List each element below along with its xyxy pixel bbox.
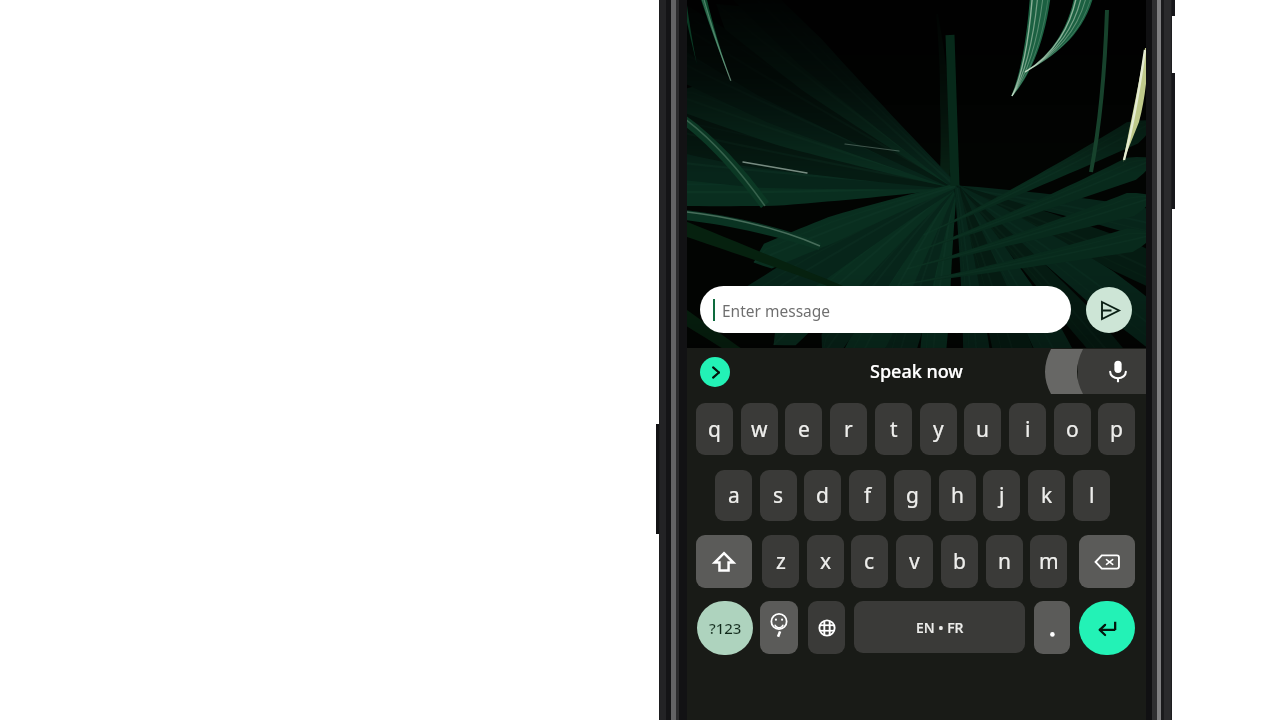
staticText: d: [816, 481, 829, 510]
staticText: w: [751, 415, 768, 444]
button[interactable]: o: [1054, 403, 1091, 455]
button[interactable]: Enter: [1079, 601, 1135, 655]
button[interactable]: Shift: [696, 535, 752, 588]
staticText: r: [844, 415, 853, 444]
button[interactable]: m: [1030, 535, 1067, 588]
button[interactable]: f: [849, 470, 886, 521]
button[interactable]: a: [715, 470, 752, 521]
staticText: n: [998, 547, 1011, 576]
staticText: t: [890, 415, 898, 444]
staticText: ?123: [709, 618, 742, 638]
button[interactable]: j: [983, 470, 1020, 521]
button[interactable]: v: [896, 535, 933, 588]
staticText: i: [1025, 415, 1031, 444]
button[interactable]: Send: [1086, 287, 1132, 333]
button[interactable]: n: [986, 535, 1023, 588]
button[interactable]: g: [894, 470, 931, 521]
button[interactable]: y: [920, 403, 957, 455]
button[interactable]: u: [964, 403, 1001, 455]
staticText: EN • FR: [916, 618, 964, 637]
button[interactable]: Period: [1034, 601, 1070, 654]
staticText: j: [999, 481, 1005, 510]
button[interactable]: Expand voice panel: [700, 357, 730, 387]
staticText: b: [953, 547, 966, 576]
button[interactable]: z: [762, 535, 799, 588]
staticText: m: [1039, 547, 1059, 576]
button[interactable]: EN • FR: [854, 601, 1025, 653]
staticText: z: [776, 547, 786, 576]
button[interactable]: Emoji: [760, 601, 798, 654]
button[interactable]: Enter message: [700, 286, 1071, 333]
staticText: s: [773, 481, 784, 510]
button[interactable]: d: [804, 470, 841, 521]
staticText: k: [1041, 481, 1053, 510]
staticText: a: [728, 481, 740, 510]
staticText: f: [864, 481, 872, 510]
button[interactable]: e: [785, 403, 822, 455]
staticText: c: [864, 547, 875, 576]
button[interactable]: l: [1073, 470, 1110, 521]
staticText: Speak now: [870, 359, 963, 384]
staticText: e: [798, 415, 810, 444]
button[interactable]: c: [851, 535, 888, 588]
button[interactable]: Change language: [808, 601, 845, 654]
staticText: v: [909, 547, 920, 576]
button[interactable]: i: [1009, 403, 1046, 455]
button[interactable]: ?123: [697, 601, 753, 655]
button[interactable]: k: [1028, 470, 1065, 521]
staticText: l: [1089, 481, 1095, 510]
button[interactable]: h: [939, 470, 976, 521]
staticText: p: [1110, 415, 1123, 444]
button[interactable]: t: [875, 403, 912, 455]
staticText: y: [933, 415, 944, 444]
staticText: Enter message: [722, 300, 831, 321]
button[interactable]: s: [760, 470, 797, 521]
staticText: u: [976, 415, 989, 444]
button[interactable]: Microphone: [1104, 357, 1132, 385]
button[interactable]: Backspace: [1079, 535, 1135, 588]
button[interactable]: x: [807, 535, 844, 588]
staticText: q: [708, 415, 721, 444]
button[interactable]: b: [941, 535, 978, 588]
button[interactable]: q: [696, 403, 733, 455]
staticText: o: [1066, 415, 1079, 444]
button[interactable]: r: [830, 403, 867, 455]
staticText: g: [906, 481, 919, 510]
button[interactable]: p: [1098, 403, 1135, 455]
staticText: h: [951, 481, 964, 510]
staticText: x: [820, 547, 832, 576]
button[interactable]: w: [741, 403, 778, 455]
